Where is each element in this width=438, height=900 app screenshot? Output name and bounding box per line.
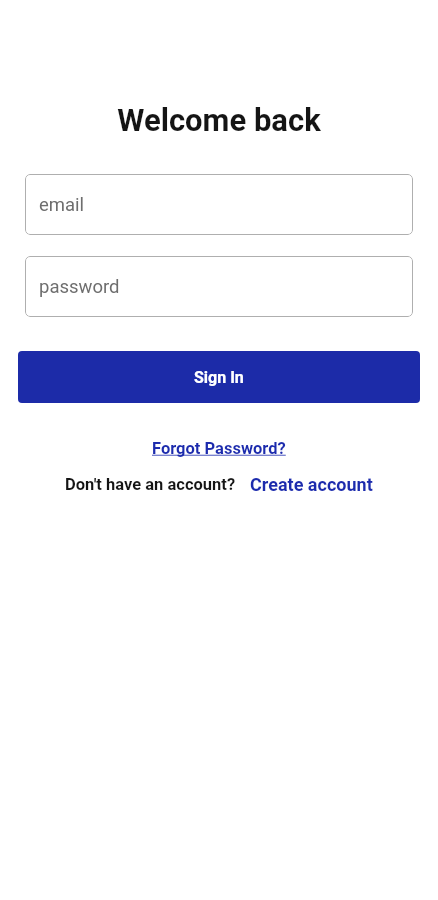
staticText: Don't have an account? — [65, 475, 236, 494]
staticText: password — [39, 276, 120, 298]
button[interactable]: Sign In — [18, 351, 420, 403]
staticText: email — [39, 194, 85, 216]
staticText: Create account — [250, 474, 373, 495]
staticText: Welcome back — [117, 102, 321, 138]
button[interactable]: Forgot Password? — [152, 439, 286, 458]
button[interactable]: password — [25, 256, 413, 317]
button[interactable]: email — [25, 174, 413, 235]
staticText: Forgot Password? — [152, 439, 286, 458]
staticText: Sign In — [194, 368, 244, 387]
button[interactable]: Create account — [250, 474, 373, 495]
